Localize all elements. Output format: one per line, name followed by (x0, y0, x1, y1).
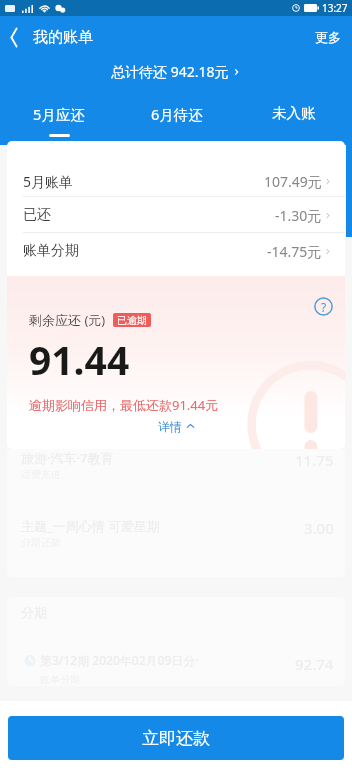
button[interactable]: 账单分期 (7, 233, 345, 269)
staticText: 5月账单 (23, 172, 74, 191)
staticText: 立即还款 (142, 728, 210, 749)
staticText: 92.74 (295, 654, 334, 674)
staticText: 91.44 (29, 333, 130, 386)
staticText: 账单分期 (23, 242, 79, 260)
staticText: 已还 (23, 206, 51, 224)
staticText: -14.75元 (267, 242, 322, 261)
button[interactable]: 已还 (7, 197, 345, 233)
button[interactable]: 5月账单 (7, 165, 345, 197)
staticText: 13:27 (322, 1, 348, 15)
staticText: 旅游·汽车·7教育 (21, 449, 114, 467)
staticText: 分期还款 (21, 536, 61, 549)
button[interactable]: 更多 (304, 21, 352, 53)
staticText: 已逾期 (117, 314, 147, 327)
staticText: 账单分期 (40, 673, 80, 686)
button[interactable]: 详情 (150, 416, 203, 437)
staticText: 11.75 (295, 450, 334, 470)
staticText: 话费充值 (21, 468, 61, 481)
staticText: 主题_一周心情 可爱星期 (21, 517, 161, 535)
staticText: 5月应还 (33, 104, 85, 124)
other: Back (7, 28, 18, 47)
staticText: xunlv (316, 749, 352, 767)
staticText: 107.49元 (264, 172, 322, 191)
staticText: 详情 (158, 419, 182, 434)
staticText: -1.30元 (275, 206, 322, 225)
staticText: 6月待还 (151, 104, 203, 124)
staticText: 总计待还 942.18元 (111, 62, 229, 81)
button[interactable]: 未入账 (235, 85, 352, 135)
button[interactable]: 6月待还 (118, 85, 235, 137)
staticText: 第3/12期 2020年02月09日分· (40, 652, 199, 668)
staticText: 更多 (315, 29, 341, 45)
staticText: 逾期影响信用，最低还款91.44元 (29, 396, 219, 414)
staticText: 未入账 (272, 104, 316, 122)
staticText: 分期 (21, 604, 47, 620)
staticText: 剩余应还 (元) (29, 311, 106, 329)
button[interactable]: 立即还款 (8, 716, 344, 760)
staticText: ? (321, 299, 327, 315)
button[interactable]: Back (0, 28, 103, 47)
button[interactable]: 5月应还 (0, 85, 118, 137)
staticText: 我的账单 (33, 28, 93, 47)
staticText: 3.00 (304, 518, 334, 538)
button[interactable]: 总计待还 942.18元 (103, 58, 249, 85)
button[interactable]: Help (314, 297, 333, 316)
